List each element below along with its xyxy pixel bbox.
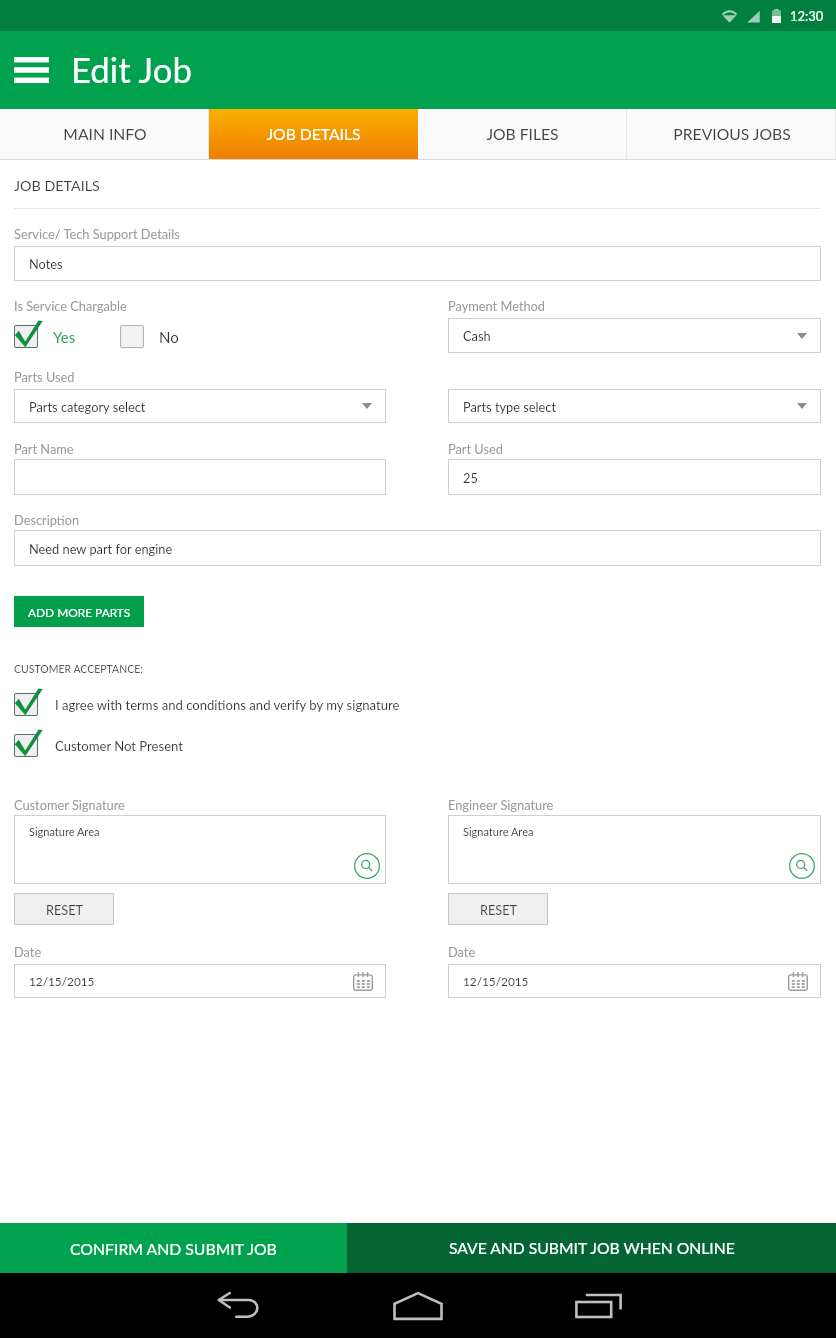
button[interactable]: 12/15/2015 [14, 964, 386, 998]
button[interactable]: Pick date [788, 972, 808, 991]
staticText: Notes [29, 256, 63, 271]
button[interactable]: 12/15/2015 [448, 964, 821, 998]
staticText: Description [14, 512, 80, 527]
button[interactable]: Expand signature area [354, 853, 380, 879]
button[interactable]: Back [209, 1283, 269, 1328]
button[interactable]: Customer Not Present [14, 730, 184, 757]
staticText: PREVIOUS JOBS [673, 125, 791, 144]
staticText: No [159, 328, 179, 346]
button[interactable]: Recent apps [568, 1283, 628, 1328]
button[interactable]: I agree with terms and conditions and ve… [14, 689, 400, 716]
staticText: JOB DETAILS [266, 125, 361, 144]
button[interactable]: Need new part for engine [14, 530, 821, 566]
staticText: Customer Not Present [55, 738, 184, 754]
button[interactable]: JOB FILES [418, 109, 627, 160]
button[interactable]: RESET [448, 893, 548, 925]
button[interactable]: CONFIRM AND SUBMIT JOB [0, 1223, 347, 1273]
staticText: 12/15/2015 [463, 974, 529, 988]
button[interactable]: SAVE AND SUBMIT JOB WHEN ONLINE [347, 1223, 836, 1273]
button[interactable]: Pick date [353, 972, 373, 991]
staticText: Is Service Chargable [14, 298, 127, 313]
button[interactable]: Expand signature area [789, 853, 815, 879]
staticText: Signature Area [29, 825, 100, 838]
staticText: Parts category select [29, 399, 146, 414]
button[interactable]: Parts category select [14, 389, 386, 423]
button[interactable]: Signature Area [448, 815, 821, 884]
staticText: 12/15/2015 [29, 974, 95, 988]
staticText: SAVE AND SUBMIT JOB WHEN ONLINE [449, 1239, 735, 1258]
staticText: Engineer Signature [448, 797, 554, 812]
staticText: Part Used [448, 441, 503, 456]
button[interactable]: Signature Area [14, 815, 386, 884]
button[interactable]: Yes, service chargeable [14, 321, 76, 348]
staticText: Need new part for engine [29, 541, 173, 556]
button[interactable]: Cash [448, 318, 821, 353]
staticText: 25 [463, 470, 478, 485]
staticText: Parts Used [14, 369, 75, 384]
staticText: RESET [46, 902, 83, 917]
button[interactable]: RESET [14, 893, 114, 925]
staticText: CUSTOMER ACCEPTANCE: [14, 663, 143, 676]
staticText: Payment Method [448, 298, 546, 313]
button[interactable]: ADD MORE PARTS [14, 596, 144, 627]
staticText: Date [14, 944, 42, 959]
staticText: Service/ Tech Support Details [14, 226, 180, 241]
button[interactable]: No, not chargeable [120, 321, 179, 348]
staticText: Date [448, 944, 476, 959]
button[interactable]: Home [388, 1283, 448, 1328]
staticText: RESET [480, 902, 517, 917]
staticText: Parts type select [463, 399, 557, 414]
staticText: CONFIRM AND SUBMIT JOB [70, 1239, 277, 1258]
staticText: 12:30 [790, 8, 824, 24]
staticText: Yes [53, 328, 76, 346]
staticText: MAIN INFO [63, 125, 147, 144]
button[interactable]: Notes [14, 246, 821, 281]
staticText: Edit Job [71, 49, 192, 91]
staticText: Customer Signature [14, 797, 125, 812]
button[interactable] [14, 459, 386, 495]
button[interactable]: Parts type select [448, 389, 821, 423]
staticText: ADD MORE PARTS [28, 605, 131, 619]
staticText: JOB DETAILS [14, 177, 100, 194]
staticText: Signature Area [463, 825, 534, 838]
staticText: Cash [463, 328, 491, 343]
staticText: Part Name [14, 441, 74, 456]
button[interactable]: PREVIOUS JOBS [627, 109, 836, 160]
button[interactable]: JOB DETAILS [209, 109, 418, 160]
button[interactable]: MAIN INFO [0, 109, 209, 160]
staticText: I agree with terms and conditions and ve… [55, 697, 400, 713]
button[interactable]: 25 [448, 459, 821, 495]
button[interactable]: Open navigation menu [1, 42, 62, 98]
staticText: JOB FILES [486, 125, 559, 144]
